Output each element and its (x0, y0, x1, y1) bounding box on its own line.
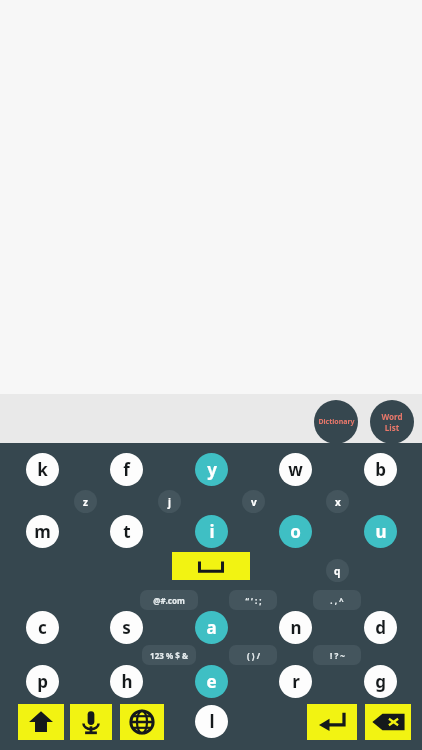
staticText: f (123, 458, 130, 481)
staticText: 123 % $ & (150, 650, 188, 661)
button[interactable]: @#.com (140, 590, 198, 610)
button[interactable]: j (158, 490, 181, 513)
button[interactable]: e (195, 665, 228, 698)
button[interactable]: z (74, 490, 97, 513)
button[interactable]: Shift (18, 704, 64, 740)
button[interactable]: q (326, 559, 349, 582)
button[interactable]: v (242, 490, 265, 513)
staticText: a (206, 616, 217, 639)
staticText: p (37, 670, 48, 693)
button[interactable]: p (26, 665, 59, 698)
button[interactable]: 123 % $ & (142, 645, 196, 665)
staticText: e (206, 670, 217, 693)
button[interactable]: Change language (120, 704, 164, 740)
button[interactable]: c (26, 611, 59, 644)
button[interactable]: s (110, 611, 143, 644)
staticText: Dictionary (318, 417, 355, 427)
staticText: w (288, 458, 303, 481)
staticText: ( ) / (247, 650, 260, 661)
button[interactable]: Space (172, 552, 250, 580)
staticText: n (290, 616, 302, 639)
staticText: s (122, 616, 131, 639)
staticText: c (38, 616, 47, 639)
button[interactable]: k (26, 453, 59, 486)
button[interactable]: i (195, 515, 228, 548)
staticText: b (375, 458, 386, 481)
staticText: x (335, 495, 341, 509)
button[interactable]: d (364, 611, 397, 644)
staticText: ! ? ~ (330, 650, 345, 661)
button[interactable]: f (110, 453, 143, 486)
button[interactable]: y (195, 453, 228, 486)
staticText: @#.com (153, 595, 185, 606)
button[interactable]: u (364, 515, 397, 548)
button[interactable]: Dictionary (314, 400, 358, 444)
button[interactable]: h (110, 665, 143, 698)
button[interactable]: r (279, 665, 312, 698)
button[interactable]: . , ^ (313, 590, 361, 610)
staticText: o (290, 520, 301, 543)
staticText: t (123, 520, 131, 543)
button[interactable]: t (110, 515, 143, 548)
button[interactable]: n (279, 611, 312, 644)
staticText: “ ‘ : ; (245, 595, 262, 606)
button[interactable]: Voice input (70, 704, 112, 740)
staticText: d (375, 616, 386, 639)
staticText: v (251, 495, 257, 509)
staticText: k (37, 458, 48, 481)
staticText: h (121, 670, 133, 693)
button[interactable]: a (195, 611, 228, 644)
button[interactable]: o (279, 515, 312, 548)
button[interactable]: ! ? ~ (313, 645, 361, 665)
button[interactable]: Enter (307, 704, 357, 740)
staticText: g (375, 670, 386, 693)
button[interactable]: “ ‘ : ; (229, 590, 277, 610)
button[interactable]: w (279, 453, 312, 486)
staticText: j (168, 495, 171, 509)
button[interactable]: b (364, 453, 397, 486)
staticText: u (375, 520, 387, 543)
button[interactable]: Backspace (365, 704, 411, 740)
staticText: q (334, 564, 341, 578)
staticText: m (34, 520, 51, 543)
staticText: . , ^ (330, 595, 344, 606)
button[interactable]: x (326, 490, 349, 513)
button[interactable]: m (26, 515, 59, 548)
staticText: r (292, 670, 300, 693)
staticText: l (209, 710, 215, 733)
button[interactable]: ( ) / (229, 645, 277, 665)
staticText: z (83, 495, 88, 509)
staticText: i (209, 520, 215, 543)
button[interactable]: g (364, 665, 397, 698)
button[interactable]: l (195, 705, 228, 738)
staticText: y (207, 458, 217, 481)
staticText: Word List (381, 411, 403, 433)
button[interactable]: Word List (370, 400, 414, 444)
